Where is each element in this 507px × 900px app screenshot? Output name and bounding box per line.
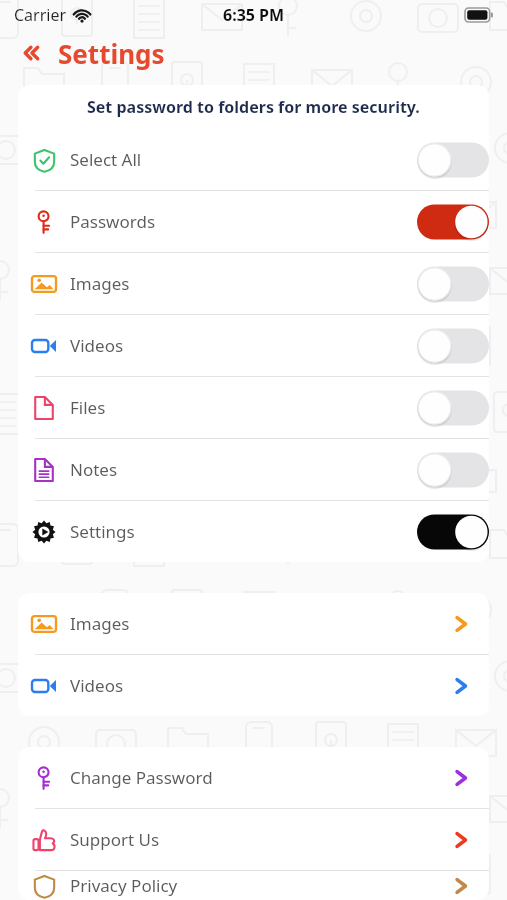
button[interactable]: Privacy Policy xyxy=(18,871,489,900)
button[interactable]: Change Password xyxy=(18,747,489,808)
staticText: 6:35 PM xyxy=(223,4,285,26)
staticText: Settings xyxy=(58,36,165,71)
button[interactable]: Support Us xyxy=(18,809,489,870)
button[interactable]: Settings xyxy=(18,501,489,562)
button[interactable]: Notes xyxy=(18,439,489,500)
staticText: Set password to folders for more securit… xyxy=(87,96,420,118)
staticText: Files xyxy=(70,396,106,419)
staticText: Videos xyxy=(70,674,124,697)
staticText: Carrier xyxy=(14,4,67,26)
staticText: Videos xyxy=(70,334,124,357)
button[interactable]: Back xyxy=(12,32,54,74)
staticText: Change Password xyxy=(70,766,213,789)
button[interactable]: Images xyxy=(18,253,489,314)
staticText: Select All xyxy=(70,148,142,171)
staticText: Images xyxy=(70,612,130,635)
button[interactable]: Videos xyxy=(18,315,489,376)
staticText: Support Us xyxy=(70,828,160,851)
staticText: Privacy Policy xyxy=(70,874,178,897)
staticText: Notes xyxy=(70,458,118,481)
staticText: Images xyxy=(70,272,130,295)
staticText: Passwords xyxy=(70,210,156,233)
button[interactable]: Videos xyxy=(18,655,489,716)
button[interactable]: Passwords xyxy=(18,191,489,252)
button[interactable]: Images xyxy=(18,593,489,654)
button[interactable]: Select All xyxy=(18,129,489,190)
staticText: Settings xyxy=(70,520,135,543)
button[interactable]: Files xyxy=(18,377,489,438)
